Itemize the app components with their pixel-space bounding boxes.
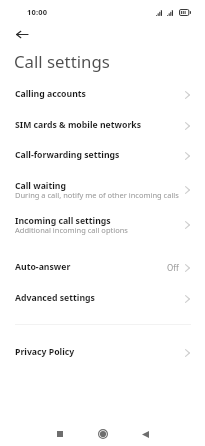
button[interactable]: Back: [10, 22, 34, 46]
staticText: Calling accounts: [15, 88, 86, 100]
staticText: Additional incoming call options: [15, 225, 128, 235]
button[interactable]: Incoming call settings: [0, 208, 205, 241]
button[interactable]: Call-forwarding settings: [0, 142, 205, 165]
staticText: Off: [167, 262, 179, 273]
staticText: Privacy Policy: [15, 346, 75, 358]
button[interactable]: Back: [133, 422, 157, 446]
button[interactable]: Auto-answer: [0, 254, 205, 277]
button[interactable]: Advanced settings: [0, 285, 205, 308]
staticText: SIM cards & mobile networks: [15, 119, 142, 131]
button[interactable]: Call waiting: [0, 173, 205, 206]
staticText: During a call, notify me of other incomi…: [15, 190, 179, 200]
button[interactable]: Calling accounts: [0, 81, 205, 104]
button[interactable]: SIM cards & mobile networks: [0, 112, 205, 135]
staticText: Call settings: [14, 50, 110, 73]
staticText: Call-forwarding settings: [15, 149, 120, 161]
button[interactable]: Privacy Policy: [0, 339, 205, 362]
staticText: Auto-answer: [15, 261, 71, 273]
staticText: Advanced settings: [15, 292, 95, 304]
staticText: Call waiting: [15, 180, 66, 192]
button[interactable]: Home: [91, 422, 115, 446]
staticText: Incoming call settings: [15, 215, 111, 227]
staticText: 10:00: [27, 7, 48, 17]
button[interactable]: Recents: [48, 422, 72, 446]
